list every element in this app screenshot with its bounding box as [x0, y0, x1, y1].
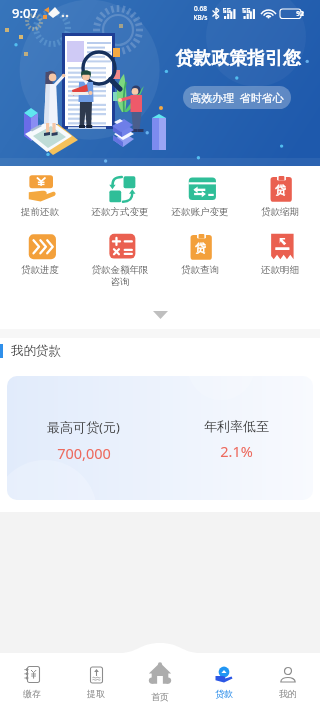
staticText: 提前还款 — [0, 206, 80, 218]
button[interactable]: 贷 — [160, 232, 240, 276]
staticText: 贷款政策指引您 — [175, 47, 301, 69]
button[interactable]: 我的 — [256, 665, 320, 711]
button[interactable]: 首页 — [128, 665, 192, 711]
button[interactable]: 贷款金额年限 咨询 — [80, 232, 160, 288]
staticText: 贷款进度 — [0, 264, 80, 276]
staticText: 0.68 — [194, 4, 207, 13]
staticText: 贷款金额年限 咨询 — [80, 264, 160, 288]
staticText: 贷 — [195, 241, 206, 255]
staticText: 贷款查询 — [160, 264, 240, 276]
button[interactable]: 贷款 — [192, 665, 256, 711]
staticText: 首页 — [151, 691, 169, 702]
staticText: 我的贷款 — [11, 343, 61, 359]
staticText: KB/s — [193, 13, 208, 22]
button[interactable]: 缴存 — [0, 665, 64, 711]
button[interactable]: 贷 — [240, 174, 320, 218]
button[interactable]: 还款明细 — [240, 232, 320, 276]
staticText: 贷款缩期 — [240, 206, 320, 218]
staticText: 年利率低至 — [204, 418, 269, 434]
staticText: 贷 — [275, 183, 286, 197]
button[interactable]: 还款账户变更 — [160, 174, 240, 218]
button[interactable]: 提取 — [64, 665, 128, 711]
staticText: 高效办理 省时省心 — [190, 90, 284, 105]
staticText: 最高可贷(元) — [47, 418, 120, 436]
button[interactable]: 贷款进度 — [0, 232, 80, 276]
staticText: 92 — [296, 9, 304, 18]
staticText: 提取 — [87, 688, 105, 699]
staticText: 还款账户变更 — [160, 206, 240, 218]
staticText: 缴存 — [23, 688, 41, 699]
staticText: 9:07 — [12, 4, 38, 22]
button[interactable]: 提前还款 — [0, 174, 80, 218]
staticText: 2.1% — [220, 441, 253, 461]
staticText: 700,000 — [57, 443, 111, 463]
staticText: 还款明细 — [240, 264, 320, 276]
staticText: 贷款 — [215, 688, 233, 699]
staticText: 我的 — [279, 688, 297, 699]
staticText: 还款方式变更 — [80, 206, 160, 218]
button[interactable]: 展开 — [0, 300, 320, 329]
button[interactable]: 还款方式变更 — [80, 174, 160, 218]
